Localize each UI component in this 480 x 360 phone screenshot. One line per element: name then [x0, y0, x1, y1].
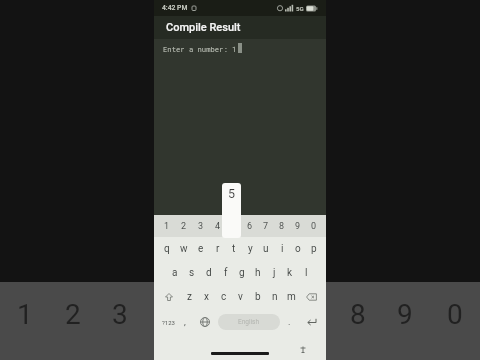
button[interactable]: 7 — [258, 215, 274, 237]
button[interactable]: z — [180, 285, 198, 309]
button[interactable]: u — [258, 237, 274, 261]
staticText: , — [184, 317, 186, 328]
button[interactable]: Compile Result — [166, 16, 326, 39]
button[interactable]: j — [266, 261, 282, 285]
staticText: v — [238, 291, 243, 303]
staticText: f — [224, 267, 228, 279]
staticText: Enter a number: 1 — [163, 44, 237, 53]
button[interactable]: l — [298, 261, 314, 285]
button[interactable]: v — [232, 285, 249, 309]
staticText: English — [238, 318, 260, 326]
button[interactable]: r — [209, 237, 226, 261]
button[interactable] — [302, 309, 322, 335]
button[interactable]: 2 — [175, 215, 192, 237]
staticText: s — [189, 267, 195, 279]
button[interactable]: w — [175, 237, 192, 261]
button[interactable]: t — [226, 237, 242, 261]
staticText: 3 — [198, 221, 204, 232]
button[interactable] — [158, 285, 180, 309]
staticText: a — [172, 267, 178, 279]
button[interactable]: y — [242, 237, 258, 261]
button[interactable]: m — [283, 285, 300, 309]
button[interactable]: , — [178, 309, 192, 335]
button[interactable]: a — [166, 261, 183, 285]
button[interactable]: p — [306, 237, 322, 261]
staticText: 2 — [65, 298, 81, 331]
button[interactable]: 5 — [226, 215, 242, 237]
staticText: 4 — [215, 221, 221, 232]
staticText: 7 — [263, 221, 269, 232]
button[interactable]: n — [266, 285, 283, 309]
button[interactable]: q — [158, 237, 175, 261]
staticText: 8 — [279, 221, 285, 232]
button[interactable]: b — [249, 285, 266, 309]
button[interactable]: g — [234, 261, 250, 285]
button[interactable]: 5 — [222, 183, 241, 238]
staticText: 6 — [247, 221, 253, 232]
button[interactable]: English — [218, 314, 280, 330]
staticText: h — [255, 267, 261, 279]
staticText: j — [273, 267, 276, 279]
staticText: u — [263, 243, 269, 255]
staticText: 4:42 PM — [162, 4, 188, 12]
staticText: p — [311, 243, 317, 255]
staticText: q — [164, 243, 170, 255]
staticText: 5 — [228, 186, 236, 201]
staticText: c — [221, 291, 227, 303]
button[interactable] — [192, 309, 218, 335]
button[interactable]: c — [215, 285, 232, 309]
staticText: r — [216, 243, 220, 255]
button[interactable]: 4 — [209, 215, 226, 237]
staticText: d — [206, 267, 212, 279]
button[interactable]: e — [192, 237, 209, 261]
staticText: m — [287, 291, 296, 303]
staticText: 0 — [311, 221, 317, 232]
button[interactable]: k — [282, 261, 298, 285]
staticText: 2 — [181, 221, 187, 232]
staticText: k — [287, 267, 293, 279]
button[interactable]: 9 — [290, 215, 306, 237]
staticText: l — [305, 267, 308, 279]
staticText: Compile Result — [166, 21, 241, 34]
button[interactable]: h — [250, 261, 266, 285]
button[interactable]: d — [200, 261, 217, 285]
button[interactable]: s — [183, 261, 200, 285]
staticText: o — [295, 243, 301, 255]
button[interactable]: 1 — [158, 215, 175, 237]
staticText: 5G — [296, 5, 304, 12]
button[interactable]: ?123 — [158, 309, 178, 335]
staticText: 1 — [17, 298, 33, 331]
staticText: w — [180, 243, 188, 255]
staticText: x — [204, 291, 209, 303]
staticText: y — [248, 243, 253, 255]
staticText: n — [272, 291, 278, 303]
button[interactable]: 0 — [306, 215, 322, 237]
button[interactable]: . — [280, 309, 298, 335]
button[interactable]: i — [274, 237, 290, 261]
button[interactable]: 6 — [242, 215, 258, 237]
staticText: g — [239, 267, 245, 279]
staticText: 8 — [350, 298, 366, 331]
button[interactable]: 8 — [274, 215, 290, 237]
button[interactable]: o — [290, 237, 306, 261]
staticText: i — [281, 243, 284, 255]
button[interactable]: f — [217, 261, 234, 285]
staticText: . — [288, 317, 291, 328]
staticText: b — [255, 291, 261, 303]
staticText: z — [187, 291, 192, 303]
staticText: 1 — [164, 221, 170, 232]
button[interactable]: 3 — [192, 215, 209, 237]
staticText: 9 — [397, 298, 413, 331]
staticText: e — [198, 243, 204, 255]
staticText: 9 — [295, 221, 301, 232]
staticText: 0 — [447, 298, 463, 331]
staticText: 3 — [112, 298, 128, 331]
staticText: ?123 — [162, 319, 175, 326]
staticText: t — [232, 243, 236, 255]
button[interactable] — [300, 285, 322, 309]
button[interactable]: x — [198, 285, 215, 309]
